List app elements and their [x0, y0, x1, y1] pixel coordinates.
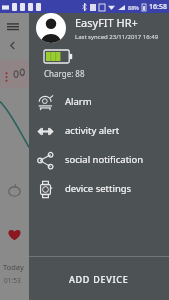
button[interactable]: activity alert: [29, 116, 169, 145]
staticText: 16:58: [149, 2, 167, 12]
staticText: Alarm: [65, 95, 92, 108]
button[interactable]: Menu: [6, 20, 20, 34]
button[interactable]: ADD DEVICE: [29, 257, 169, 300]
staticText: Charge: 88: [44, 68, 85, 79]
button[interactable]: device settings: [29, 174, 169, 203]
button[interactable]: Alarm: [29, 87, 169, 116]
button[interactable]: social notification: [29, 145, 169, 174]
staticText: Today: [3, 262, 24, 272]
staticText: social notification: [65, 153, 144, 166]
staticText: 01:53: [4, 276, 21, 285]
staticText: 88%: [128, 4, 139, 11]
staticText: Last synced 23/11/2017 16:49: [75, 33, 159, 41]
staticText: activity alert: [65, 124, 120, 137]
staticText: device settings: [65, 182, 132, 195]
button[interactable]: Profile: [36, 13, 66, 43]
staticText: EasyFIT HR+: [75, 15, 138, 30]
staticText: ADD DEVICE: [69, 273, 129, 285]
